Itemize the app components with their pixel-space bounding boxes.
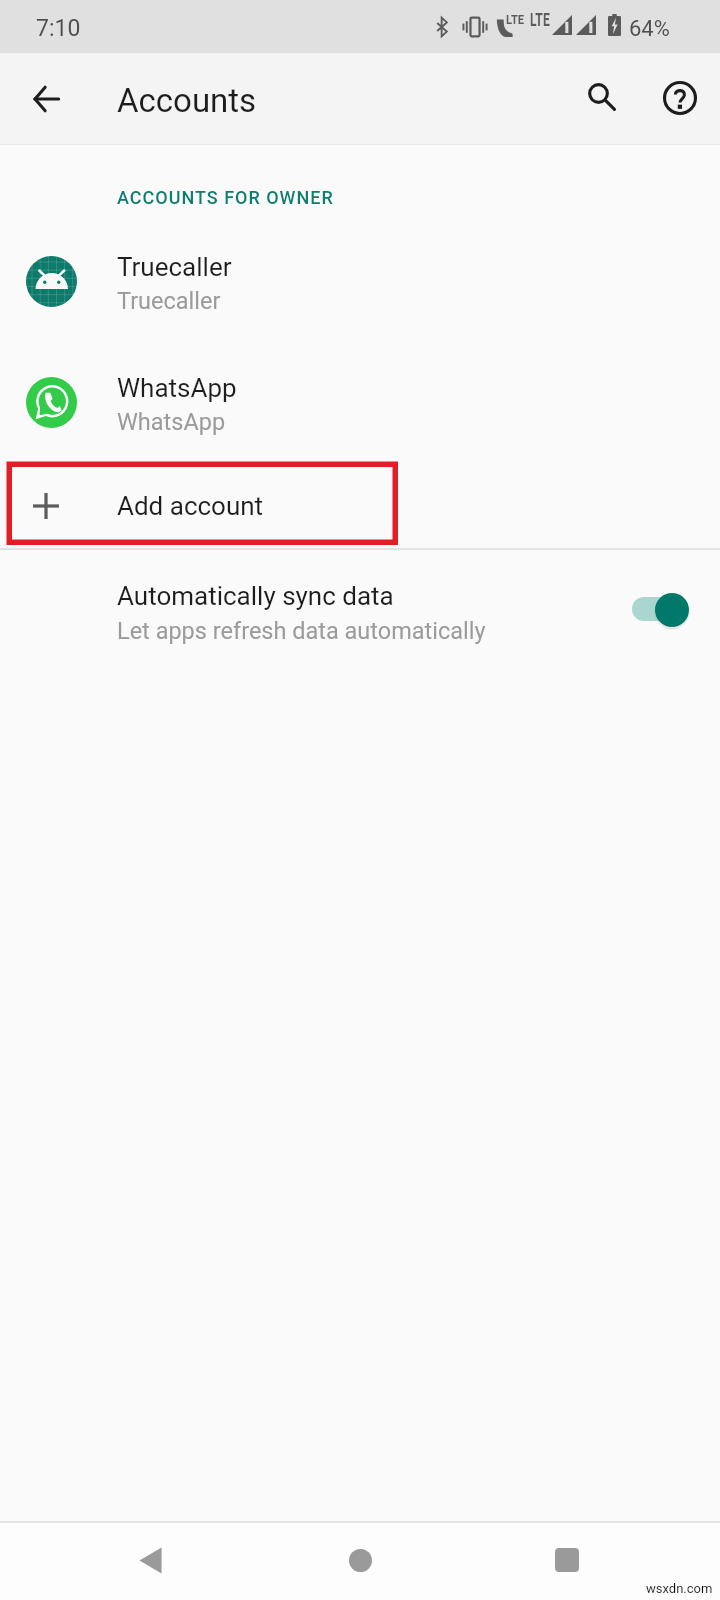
staticText: WhatsApp [117,408,226,436]
staticText: wsxdn.com [646,1581,713,1596]
staticText: 64% [629,16,670,42]
button[interactable]: Automatically sync data [0,550,720,652]
staticText: LTE [506,12,524,27]
staticText: Truecaller [117,252,232,282]
button[interactable]: Search [576,71,628,123]
button[interactable]: Truecaller [0,226,720,347]
staticText: Truecaller [117,287,221,315]
button[interactable]: WhatsApp [0,347,720,468]
staticText: 7:10 [36,15,81,42]
staticText: Let apps refresh data automatically [117,617,486,645]
staticText: LTE [530,8,550,30]
button[interactable]: Recent apps [535,1528,599,1592]
staticText: Add account [117,491,264,521]
staticText: Automatically sync data [117,581,394,611]
button[interactable]: Home [328,1528,392,1592]
button[interactable]: Automatically sync data toggle, on [628,586,696,634]
staticText: ACCOUNTS FOR OWNER [117,187,334,208]
button[interactable]: Navigate up [20,73,72,125]
staticText: Accounts [117,81,257,120]
button[interactable]: Add account [0,466,720,542]
button[interactable]: Back [118,1528,182,1592]
button[interactable]: Help [654,72,706,124]
staticText: WhatsApp [117,373,237,403]
